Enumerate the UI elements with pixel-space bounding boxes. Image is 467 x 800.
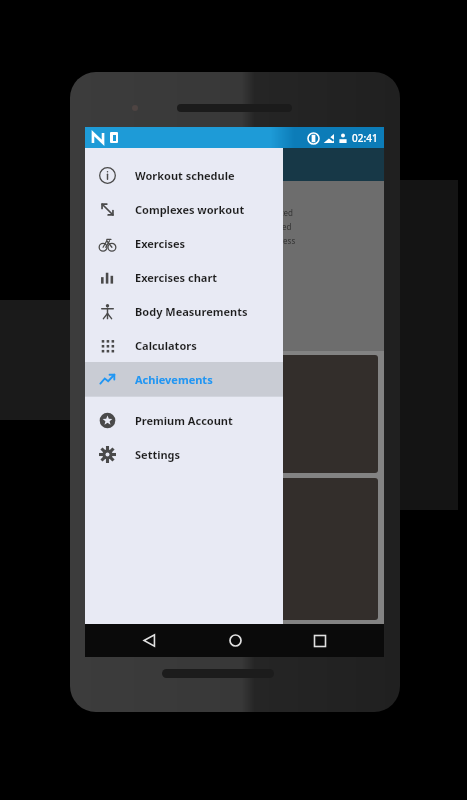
button[interactable]: Home: [213, 624, 257, 657]
staticText: Best time: [103, 399, 152, 414]
staticText: Premium Account: [135, 413, 233, 428]
button[interactable]: Recent apps: [298, 624, 342, 657]
button[interactable]: Workout schedule: [85, 158, 283, 192]
staticText: 0:00:00: [103, 414, 145, 430]
button[interactable]: Complexes workout: [85, 192, 283, 226]
button[interactable]: Exercises chart: [85, 260, 283, 294]
button[interactable]: Achievements: [85, 362, 283, 396]
staticText: Calculators: [135, 338, 197, 353]
button[interactable]: Body Measurements: [85, 294, 283, 328]
staticText: Exercises chart: [135, 270, 218, 285]
button[interactable]: Back: [127, 624, 171, 657]
button[interactable]: Settings: [85, 437, 283, 471]
staticText: 02:41: [352, 131, 378, 145]
staticText: scheduled: [253, 221, 292, 232]
staticText: completed: [253, 207, 293, 218]
staticText: in progress: [253, 235, 296, 246]
button[interactable]: Exercises: [85, 226, 283, 260]
staticText: Workout schedule: [135, 168, 235, 183]
button[interactable]: Calculators: [85, 328, 283, 362]
staticText: 0:00:00: [103, 451, 145, 467]
staticText: Fastest: [103, 436, 140, 451]
staticText: Exercises: [135, 236, 186, 251]
button[interactable]: Premium Account: [85, 403, 283, 437]
staticText: Complexes workout: [135, 202, 245, 217]
staticText: Body Measurements: [135, 304, 248, 319]
staticText: Settings: [135, 447, 181, 462]
staticText: Achievements: [135, 372, 213, 387]
